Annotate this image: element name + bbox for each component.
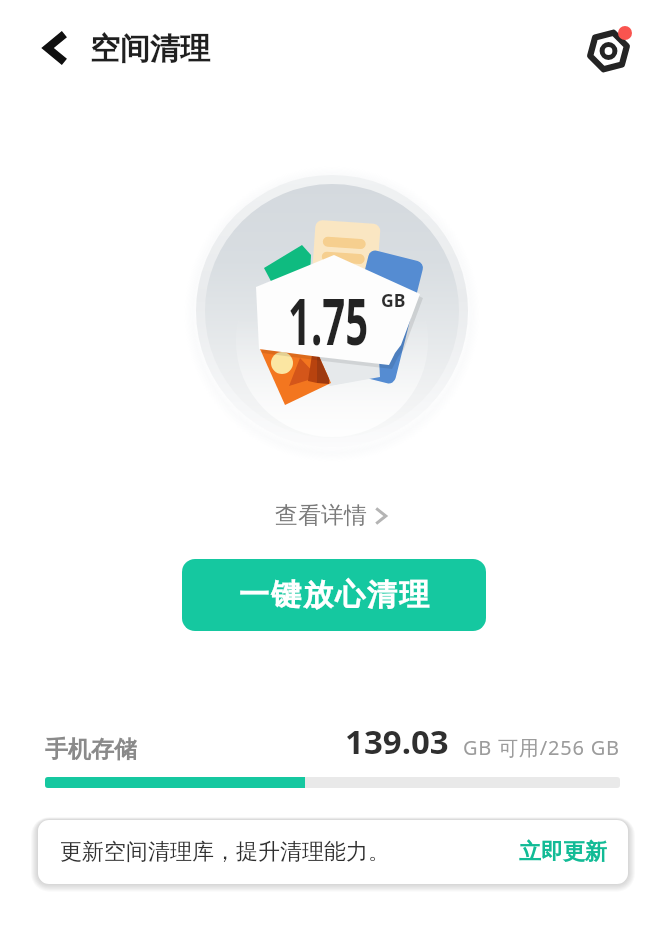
- staticText: GB 可用/256 GB: [463, 734, 620, 761]
- staticText: 139.03: [345, 719, 449, 764]
- staticText: 立即更新: [519, 838, 607, 866]
- button[interactable]: Account: [582, 17, 642, 77]
- staticText: 空间清理: [90, 30, 210, 68]
- staticText: 查看详情: [275, 501, 367, 530]
- staticText: GB: [381, 289, 406, 313]
- staticText: 更新空间清理库，提升清理能力。: [60, 838, 390, 866]
- button[interactable]: 查看详情: [269, 497, 397, 534]
- staticText: 手机存储: [45, 735, 137, 764]
- button[interactable]: Back: [33, 25, 79, 71]
- button[interactable]: 更新空间清理库，提升清理能力。: [38, 820, 628, 884]
- staticText: 一键放心清理: [238, 576, 430, 614]
- staticText: 1.75: [288, 276, 368, 363]
- button[interactable]: 一键放心清理: [182, 559, 486, 631]
